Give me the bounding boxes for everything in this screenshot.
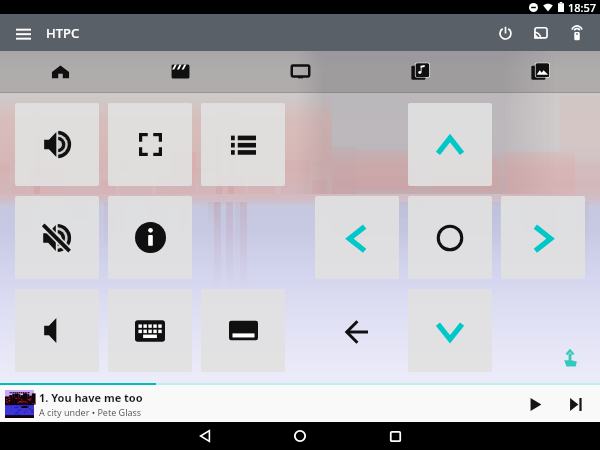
button[interactable]: Movies <box>120 51 240 92</box>
button[interactable]: Right <box>501 196 585 279</box>
button[interactable]: Left <box>315 196 399 279</box>
button[interactable]: TV <box>240 51 360 92</box>
button[interactable]: Remote <box>564 20 590 46</box>
button[interactable]: Fullscreen <box>108 103 192 186</box>
button[interactable]: Next <box>558 387 592 421</box>
button[interactable]: Info <box>108 196 192 279</box>
button[interactable]: Home <box>285 422 315 450</box>
button[interactable]: Mute <box>15 196 99 279</box>
button[interactable]: Menu <box>12 22 34 44</box>
button[interactable]: Select <box>408 196 492 279</box>
button[interactable]: Music <box>360 51 480 92</box>
staticText: HTPC <box>46 24 80 42</box>
button[interactable]: Up <box>408 103 492 186</box>
button[interactable]: Touch gestures <box>557 345 583 371</box>
button[interactable]: Pictures <box>480 51 600 92</box>
button[interactable]: Playlist <box>201 103 285 186</box>
staticText: A city under • Pete Glass <box>39 406 142 418</box>
button[interactable]: Volume down <box>15 289 99 372</box>
button[interactable]: Volume up <box>15 103 99 186</box>
button[interactable]: Power <box>492 20 518 46</box>
button[interactable]: Play <box>518 387 552 421</box>
button[interactable]: Back <box>190 422 220 450</box>
button[interactable]: Down <box>408 289 492 372</box>
button[interactable]: Back <box>337 313 376 351</box>
button[interactable]: Recents <box>380 422 410 450</box>
button[interactable]: Keyboard <box>108 289 192 372</box>
staticText: 18:57 <box>568 0 597 14</box>
staticText: 1. You have me too <box>39 390 143 405</box>
button[interactable]: Cast <box>528 20 554 46</box>
button[interactable]: Subtitles <box>201 289 285 372</box>
button[interactable]: Home <box>0 51 120 92</box>
